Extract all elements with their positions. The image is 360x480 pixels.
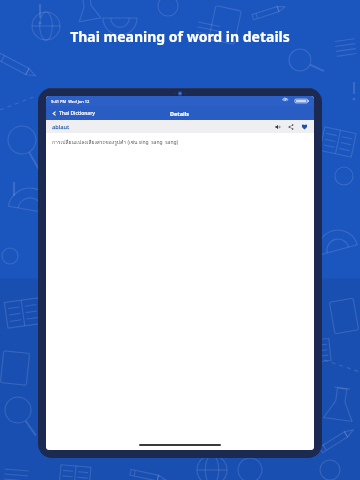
staticText: Thai meaning of word in details (70, 27, 290, 46)
button[interactable]: Favorite (300, 122, 309, 131)
button[interactable]: Share (287, 123, 295, 131)
button[interactable]: Back (50, 108, 97, 119)
other: Back (52, 111, 57, 116)
staticText: Thai Dictionary (59, 110, 95, 117)
staticText: 9:41 PM Wed Jan 12 (51, 99, 90, 104)
staticText: การเปลี่ยนแปลงเสียงสระของรูปคำ (เช่น sin… (52, 138, 179, 146)
staticText: Details (170, 110, 190, 117)
button[interactable]: Pronounce (274, 123, 282, 131)
button[interactable]: ablaut (52, 123, 70, 130)
